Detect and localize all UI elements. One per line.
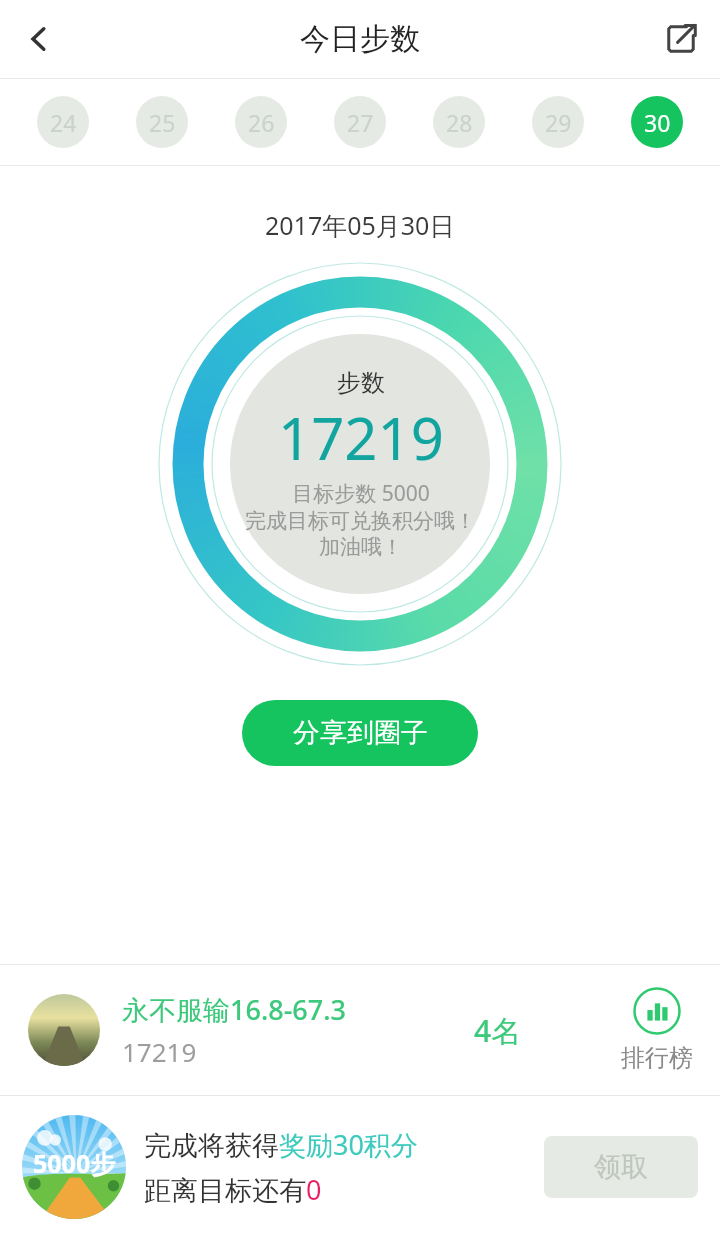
staticText: 目标步数 5000 bbox=[292, 479, 430, 508]
staticText: 完成目标可兑换积分哦！ bbox=[245, 508, 476, 534]
button[interactable]: 28 bbox=[433, 96, 485, 148]
button[interactable]: 分享到圈子 bbox=[242, 700, 478, 766]
staticText: 2017年05月30日 bbox=[265, 208, 455, 242]
button[interactable]: Share bbox=[642, 0, 720, 78]
staticText: 28 bbox=[446, 107, 473, 138]
staticText: 30 bbox=[644, 107, 671, 138]
staticText: 27 bbox=[347, 107, 374, 138]
staticText: 29 bbox=[545, 107, 572, 138]
staticText: 分享到圈子 bbox=[293, 716, 428, 750]
staticText: 完成将获得奖励30积分 bbox=[144, 1126, 418, 1163]
staticText: 4名 bbox=[474, 1010, 522, 1051]
button[interactable]: 排行榜 bbox=[602, 987, 712, 1073]
staticText: 步数 bbox=[337, 368, 385, 398]
button[interactable]: 领取 bbox=[544, 1136, 698, 1198]
staticText: 永不服输16.8-67.3 bbox=[122, 991, 347, 1028]
staticText: 今日步数 bbox=[300, 20, 420, 58]
staticText: 排行榜 bbox=[621, 1043, 693, 1073]
staticText: 25 bbox=[149, 107, 176, 138]
button[interactable]: 永不服输16.8-67.3 bbox=[0, 965, 720, 1095]
staticText: 24 bbox=[50, 107, 77, 138]
staticText: 领取 bbox=[594, 1150, 648, 1184]
button[interactable]: 24 bbox=[37, 96, 89, 148]
staticText: 5000步 bbox=[33, 1146, 116, 1180]
button[interactable]: Back bbox=[0, 0, 78, 78]
staticText: 26 bbox=[248, 107, 275, 138]
staticText: 加油哦！ bbox=[319, 534, 403, 560]
staticText: 距离目标还有0 bbox=[144, 1171, 322, 1208]
button[interactable]: 27 bbox=[334, 96, 386, 148]
button[interactable]: 25 bbox=[136, 96, 188, 148]
staticText: 17219 bbox=[278, 398, 444, 477]
button[interactable]: 30 bbox=[631, 96, 683, 148]
staticText: 17219 bbox=[122, 1034, 197, 1069]
button[interactable]: 29 bbox=[532, 96, 584, 148]
button[interactable]: 26 bbox=[235, 96, 287, 148]
